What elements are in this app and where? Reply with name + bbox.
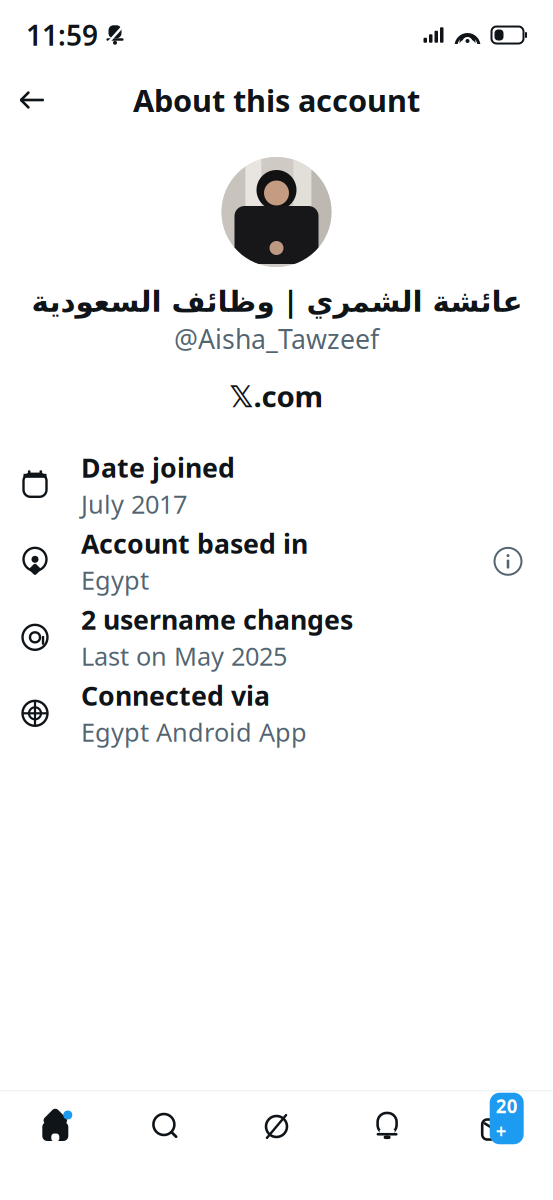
button[interactable]: Grok — [221, 1097, 332, 1155]
staticText: 𝕏.com — [229, 376, 323, 415]
staticText: عائشة الشمري | وظائف السعودية — [31, 281, 522, 320]
staticText: Account based in — [81, 526, 308, 561]
staticText: 20+ — [496, 1094, 518, 1143]
staticText: July 2017 — [81, 487, 187, 521]
button[interactable]: Date joined — [0, 447, 553, 523]
staticText: 11:59 — [26, 16, 98, 54]
button[interactable]: Search — [111, 1097, 221, 1155]
staticText: Egypt Android App — [81, 715, 307, 749]
button[interactable]: Back — [8, 76, 56, 124]
button[interactable]: Account based in — [0, 523, 553, 599]
button[interactable]: Home — [0, 1097, 111, 1155]
staticText: Date joined — [81, 450, 235, 485]
button[interactable]: 𝕏.com — [219, 370, 333, 421]
staticText: About this account — [133, 80, 420, 120]
staticText: @Aisha_Tawzeef — [174, 321, 379, 356]
staticText: Connected via — [81, 678, 270, 713]
button[interactable]: 2 username changes — [0, 599, 553, 675]
staticText: Last on May 2025 — [81, 639, 287, 673]
button[interactable]: Messages, 20 plus unread — [442, 1097, 553, 1155]
staticText: 2 username changes — [81, 602, 353, 637]
button[interactable]: Notifications — [332, 1097, 442, 1155]
staticText: Egypt — [81, 563, 149, 597]
button[interactable]: Connected via — [0, 675, 553, 751]
